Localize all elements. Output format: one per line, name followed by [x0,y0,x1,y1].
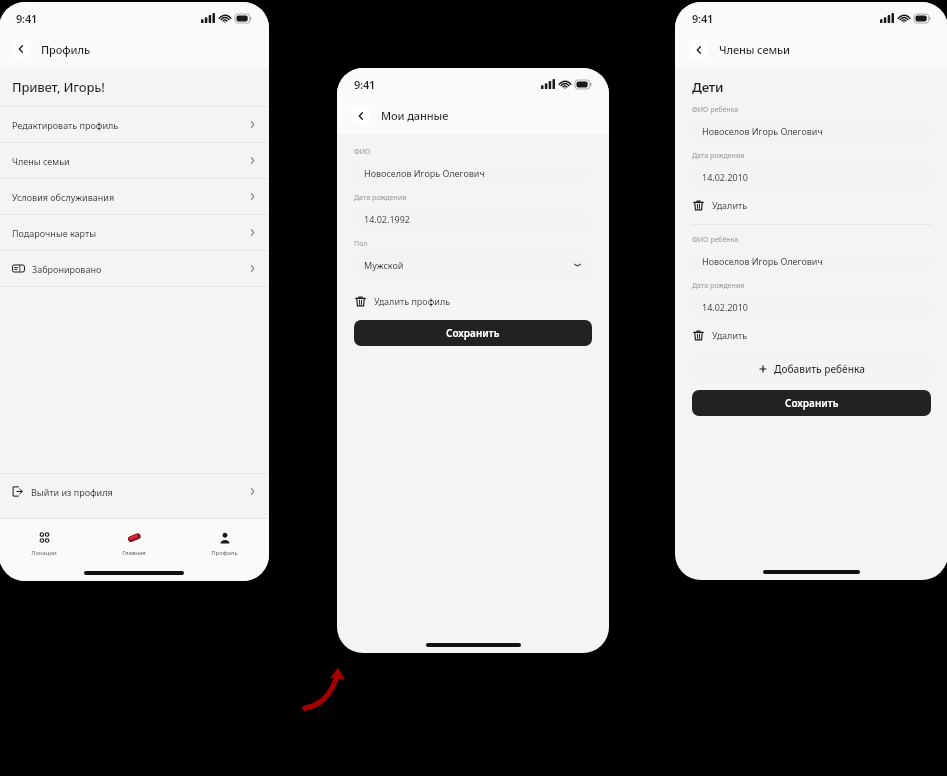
staticText: Главная [122,549,146,557]
staticText: Новоселов Игорь Олегович [364,167,485,179]
staticText: Пол [354,239,368,249]
button[interactable]: Назад [12,40,30,58]
staticText: Добавить ребёнка [774,362,865,376]
button[interactable]: Локации [13,528,75,559]
other: Профиль [217,530,232,545]
button[interactable]: Добавить ребёнка [692,356,931,382]
staticText: Привет, Игорь! [12,78,105,96]
button[interactable]: Назад [351,106,370,125]
button[interactable]: 14.02.2010 [692,165,931,188]
staticText: ФИО [354,147,371,157]
staticText: 14.02.1992 [364,213,411,225]
button[interactable]: 14.02.1992 [354,207,592,230]
staticText: Подарочные карты [12,227,97,239]
staticText: Профиль [211,549,238,557]
button[interactable]: Новоселов Игорь Олегович [354,161,592,184]
staticText: Локации [31,549,57,557]
staticText: Дата рождения [692,151,745,161]
staticText: Профиль [41,42,90,57]
button[interactable]: Главная [103,528,165,559]
staticText: Дата рождения [692,281,745,291]
other: Локации [37,530,52,545]
button[interactable]: 14.02.2010 [692,295,931,318]
button[interactable]: Удалить [692,326,749,344]
button[interactable]: Удалить [692,196,749,214]
button[interactable]: Условия обслуживания [0,179,269,214]
staticText: Мои данные [381,108,449,123]
staticText: Члены семьи [719,42,791,57]
staticText: ФИО ребёнка [692,105,739,115]
staticText: Удалить [712,199,748,211]
button[interactable]: Мужской [354,253,592,276]
button[interactable]: Назад [689,40,708,59]
staticText: Удалить [712,329,748,341]
staticText: ФИО ребёнка [692,235,739,245]
button[interactable]: Удалить профиль [354,292,452,310]
button[interactable]: Сохранить [692,390,931,416]
staticText: Дети [692,78,724,96]
button[interactable]: Забронировано [0,251,269,286]
staticText: 9:41 [692,11,714,26]
button[interactable]: Редактировать профиль [0,107,269,142]
staticText: Мужской [364,259,404,271]
staticText: Сохранить [446,326,500,340]
staticText: Забронировано [32,263,102,275]
staticText: Выйти из профиля [31,486,113,498]
staticText: Удалить профиль [374,295,451,307]
button[interactable]: Подарочные карты [0,215,269,250]
button[interactable]: Члены семьи [0,143,269,178]
staticText: Редактировать профиль [12,119,119,131]
button[interactable]: Новоселов Игорь Олегович [692,249,931,272]
staticText: Члены семьи [12,155,70,167]
staticText: 14.02.2010 [702,171,749,183]
other: Главная [127,530,142,545]
button[interactable]: Новоселов Игорь Олегович [692,119,931,142]
staticText: 14.02.2010 [702,301,749,313]
button[interactable]: Профиль [193,528,255,559]
staticText: Сохранить [785,396,839,410]
staticText: 9:41 [354,77,376,92]
staticText: Новоселов Игорь Олегович [702,255,823,267]
button[interactable]: Выйти из профиля [0,474,269,509]
staticText: Условия обслуживания [12,191,115,203]
button[interactable]: Сохранить [354,320,592,346]
staticText: Новоселов Игорь Олегович [702,125,823,137]
staticText: 9:41 [16,11,38,26]
staticText: Дата рождения [354,193,407,203]
